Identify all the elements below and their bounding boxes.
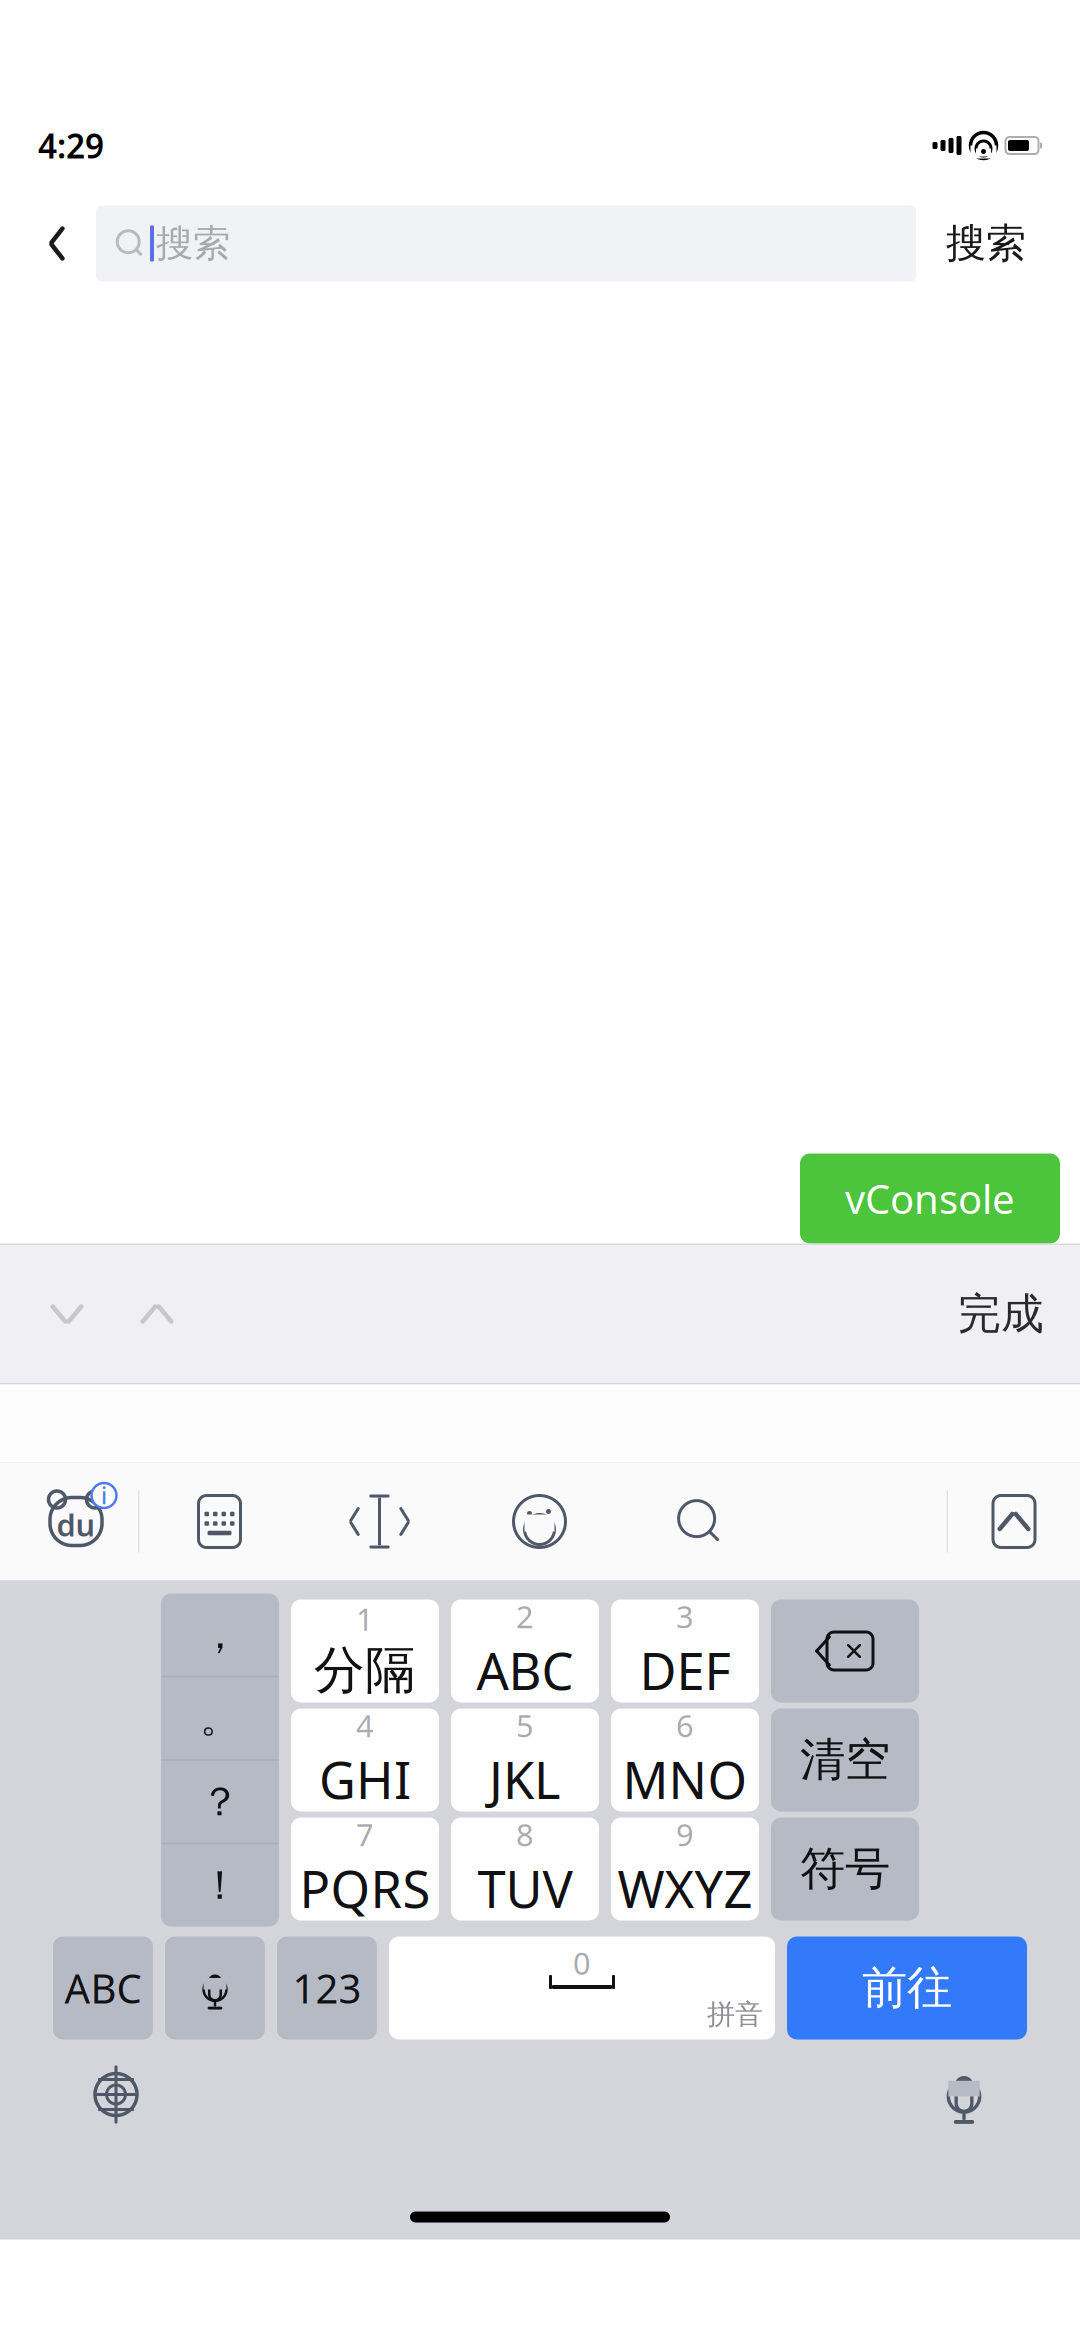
staticText: 完成	[958, 1288, 1044, 1340]
button[interactable]: 前往	[787, 1936, 1027, 2039]
button[interactable]: 百度输入法设置	[14, 1471, 138, 1571]
staticText: 123	[292, 1961, 361, 2014]
button[interactable]: ！	[161, 1844, 279, 1926]
button[interactable]: 搜索	[916, 203, 1056, 283]
staticText: 拼音	[707, 1997, 763, 2031]
button[interactable]: 。	[161, 1677, 279, 1759]
button[interactable]: 删除	[771, 1599, 919, 1702]
staticText: 6	[676, 1705, 694, 1746]
button[interactable]: 键盘布局	[139, 1471, 299, 1571]
staticText: 3	[676, 1596, 694, 1637]
button[interactable]: 语音输入	[165, 1936, 265, 2039]
button[interactable]: 上一项	[22, 1266, 112, 1362]
button[interactable]: 搜索	[619, 1471, 779, 1571]
button[interactable]: 返回	[18, 203, 96, 283]
button[interactable]: vConsole	[800, 1153, 1060, 1243]
button[interactable]: 切换键盘	[56, 2039, 176, 2149]
button[interactable]: 123	[277, 1936, 377, 2039]
staticText: PQRS	[299, 1855, 430, 1922]
button[interactable]: 8	[451, 1817, 599, 1920]
staticText: ？	[200, 1777, 240, 1826]
staticText: ABC	[64, 1961, 141, 2014]
staticText: du	[56, 1504, 95, 1545]
button[interactable]: 清空	[771, 1708, 919, 1811]
staticText: 分隔	[314, 1639, 416, 1701]
staticText: 4	[356, 1705, 374, 1746]
staticText: ABC	[476, 1637, 573, 1704]
staticText: 7	[356, 1814, 374, 1855]
button[interactable]: ？	[161, 1761, 279, 1843]
button[interactable]: 收起键盘	[948, 1471, 1080, 1571]
staticText: 0	[573, 1942, 591, 1983]
button[interactable]: 2	[451, 1599, 599, 1702]
staticText: i	[101, 1480, 107, 1510]
staticText: 搜索	[156, 221, 230, 266]
button[interactable]: 下一项	[112, 1266, 202, 1362]
staticText: vConsole	[845, 1172, 1015, 1225]
button[interactable]: 4	[291, 1708, 439, 1811]
staticText: 。	[200, 1694, 240, 1743]
button[interactable]: 符号	[771, 1817, 919, 1920]
staticText: 9	[676, 1814, 694, 1855]
staticText: ，	[200, 1610, 240, 1659]
button[interactable]: 3	[611, 1599, 759, 1702]
staticText: 搜索	[946, 219, 1026, 268]
staticText: 1	[356, 1598, 374, 1639]
button[interactable]: ，	[161, 1593, 279, 1676]
staticText: JKL	[489, 1746, 561, 1813]
button[interactable]: 9	[611, 1817, 759, 1920]
button[interactable]: 0	[389, 1936, 775, 2039]
button[interactable]: ABC	[53, 1936, 153, 2039]
button[interactable]: 移动光标	[299, 1471, 459, 1571]
button[interactable]: 7	[291, 1817, 439, 1920]
staticText: WXYZ	[617, 1855, 752, 1922]
staticText: ！	[200, 1861, 240, 1910]
button[interactable]: 6	[611, 1708, 759, 1811]
staticText: 5	[516, 1705, 534, 1746]
staticText: GHI	[319, 1746, 411, 1813]
staticText: 符号	[800, 1841, 890, 1897]
staticText: 2	[516, 1596, 534, 1637]
staticText: 4:29	[38, 123, 104, 168]
button[interactable]: 表情	[459, 1471, 619, 1571]
button[interactable]: 1	[291, 1599, 439, 1702]
staticText: DEF	[639, 1637, 730, 1704]
staticText: 清空	[800, 1732, 890, 1788]
staticText: 8	[516, 1814, 534, 1855]
staticText: MNO	[622, 1746, 747, 1813]
button[interactable]: 搜索	[96, 205, 916, 281]
button[interactable]: 听写	[904, 2039, 1024, 2149]
button[interactable]: 5	[451, 1708, 599, 1811]
staticText: 前往	[862, 1960, 952, 2016]
button[interactable]: 完成	[944, 1266, 1058, 1362]
staticText: TUV	[477, 1855, 572, 1922]
